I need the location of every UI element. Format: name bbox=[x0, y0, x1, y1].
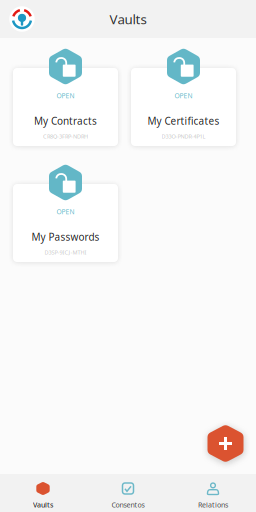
staticText: Relations bbox=[198, 500, 228, 510]
staticText: My Passwords bbox=[31, 230, 99, 244]
button[interactable]: Add vault bbox=[207, 424, 243, 462]
button[interactable]: OPEN bbox=[13, 50, 118, 146]
staticText: My Certificates bbox=[147, 114, 219, 128]
staticText: OPEN bbox=[174, 91, 192, 100]
button[interactable]: Consentos bbox=[85, 474, 170, 512]
staticText: OPEN bbox=[56, 91, 74, 100]
staticText: Consentos bbox=[111, 500, 144, 510]
staticText: D3SP-9ICJ-MTHI bbox=[44, 248, 86, 256]
button[interactable]: OPEN bbox=[13, 166, 118, 262]
staticText: Vaults bbox=[33, 500, 53, 510]
button[interactable]: Relations bbox=[170, 474, 255, 512]
staticText: Vaults bbox=[109, 10, 146, 28]
button[interactable]: Home bbox=[9, 6, 35, 32]
button[interactable]: Vaults bbox=[0, 474, 85, 512]
button[interactable]: OPEN bbox=[131, 50, 236, 146]
staticText: CR8Q-3FRP-NDRH bbox=[43, 132, 88, 140]
staticText: OPEN bbox=[56, 207, 74, 216]
staticText: D33O-PNDR-4P1L bbox=[161, 132, 205, 140]
staticText: My Contracts bbox=[34, 114, 97, 128]
